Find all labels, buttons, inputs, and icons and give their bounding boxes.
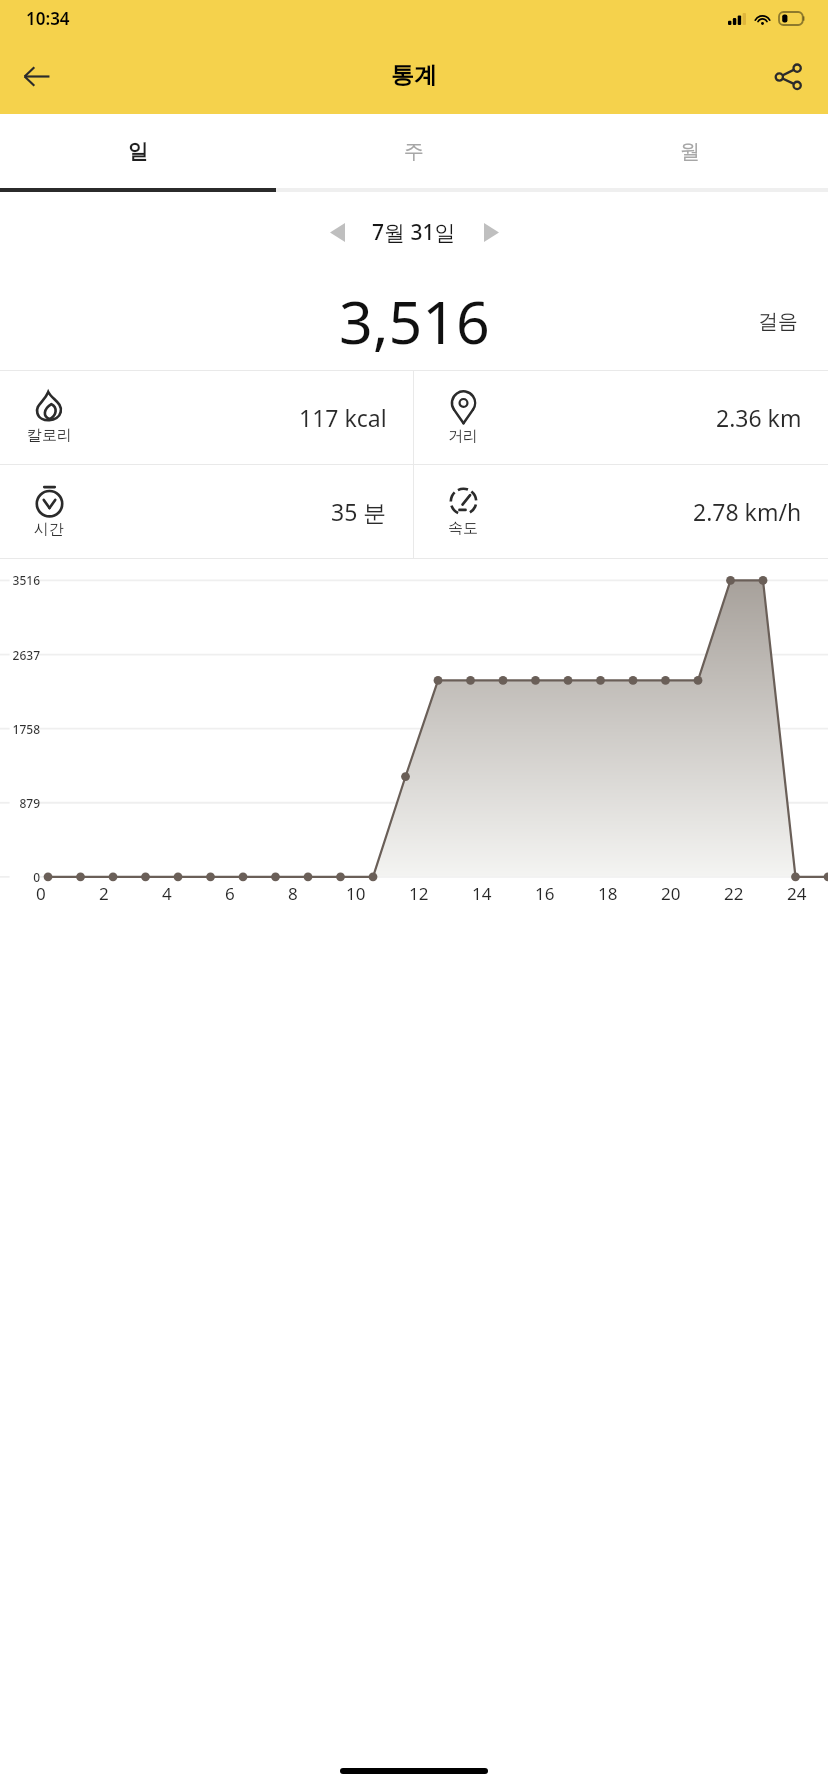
staticText: 10:34	[26, 7, 70, 30]
staticText: 0	[0, 869, 40, 885]
staticText: 6	[225, 882, 235, 905]
staticText: 18	[598, 882, 618, 905]
staticText: 8	[288, 882, 298, 905]
staticText: 24	[787, 882, 807, 905]
staticText: 117 kcal	[299, 402, 387, 433]
button[interactable]: Back	[6, 46, 66, 106]
staticText: 2.78 km/h	[693, 496, 802, 527]
staticText: 20	[661, 882, 681, 905]
staticText: 월	[680, 139, 700, 164]
staticText: 12	[409, 882, 429, 905]
staticText: 시간	[34, 520, 64, 539]
staticText: 2637	[0, 647, 40, 663]
staticText: 2.36 km	[716, 402, 802, 433]
staticText: 걸음	[758, 309, 798, 334]
staticText: 일	[128, 139, 148, 164]
staticText: 주	[404, 139, 424, 164]
button[interactable]: 시간	[0, 465, 413, 558]
button[interactable]: Next day	[468, 209, 514, 255]
staticText: 통계	[391, 61, 437, 90]
staticText: 14	[472, 882, 492, 905]
button[interactable]: 칼로리	[0, 371, 413, 464]
staticText: 7월 31일	[372, 218, 456, 247]
button[interactable]: Share	[758, 46, 818, 106]
staticText: 거리	[448, 427, 478, 446]
staticText: 10	[346, 882, 366, 905]
staticText: 0	[36, 882, 46, 905]
button[interactable]: 속도	[414, 465, 828, 558]
staticText: 1758	[0, 721, 40, 737]
button[interactable]: 월	[552, 114, 828, 188]
staticText: 속도	[448, 519, 478, 538]
button[interactable]: 거리	[414, 371, 828, 464]
button[interactable]: 일	[0, 114, 276, 188]
staticText: 35 분	[331, 496, 387, 527]
staticText: 4	[162, 882, 172, 905]
staticText: 879	[0, 795, 40, 811]
button[interactable]: Previous day	[314, 209, 360, 255]
staticText: 2	[99, 882, 109, 905]
staticText: 칼로리	[27, 426, 72, 445]
button[interactable]: 주	[276, 114, 552, 188]
staticText: 3,516	[339, 281, 490, 361]
staticText: 16	[535, 882, 555, 905]
staticText: 3516	[0, 572, 40, 588]
staticText: 22	[724, 882, 744, 905]
